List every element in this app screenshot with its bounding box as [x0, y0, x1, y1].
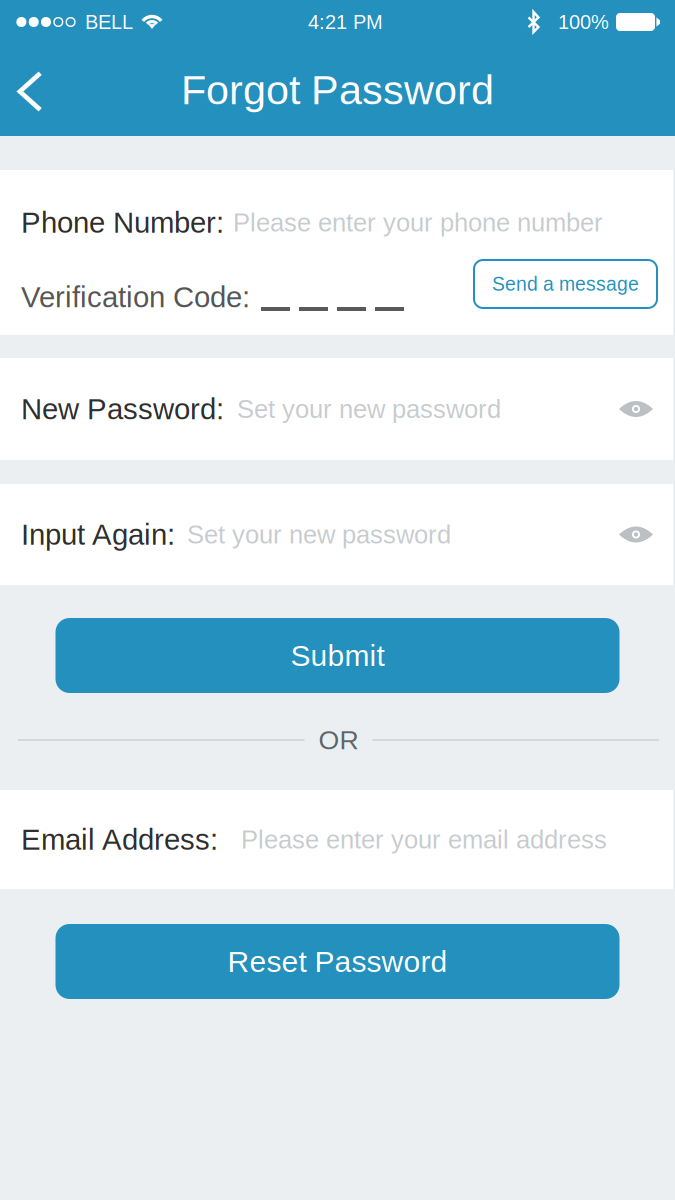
staticText: Please enter your email address — [241, 825, 607, 854]
staticText: Forgot Password — [181, 67, 494, 113]
staticText: Submit — [290, 639, 384, 672]
button[interactable]: Reset Password — [55, 924, 619, 999]
staticText: 4:21 PM — [308, 11, 383, 33]
staticText: Reset Password — [227, 945, 447, 978]
button[interactable]: Submit — [55, 618, 619, 693]
staticText: OR — [318, 725, 358, 755]
staticText: 100% — [558, 11, 609, 33]
button[interactable]: Show password — [618, 394, 654, 424]
staticText: Email Address: — [21, 823, 218, 856]
staticText: Send a message — [492, 273, 639, 295]
button[interactable]: Back — [0, 51, 60, 129]
staticText: Verification Code: — [21, 281, 250, 313]
staticText: Input Again: — [21, 518, 175, 551]
button[interactable]: Send a message — [474, 260, 657, 308]
staticText: Set your new password — [237, 395, 501, 423]
staticText: New Password: — [21, 393, 224, 425]
staticText: Phone Number: — [21, 206, 224, 239]
button[interactable]: Show password — [618, 519, 654, 549]
staticText: Please enter your phone number — [233, 208, 603, 237]
staticText: Set your new password — [187, 520, 451, 549]
staticText: BELL — [85, 11, 133, 33]
